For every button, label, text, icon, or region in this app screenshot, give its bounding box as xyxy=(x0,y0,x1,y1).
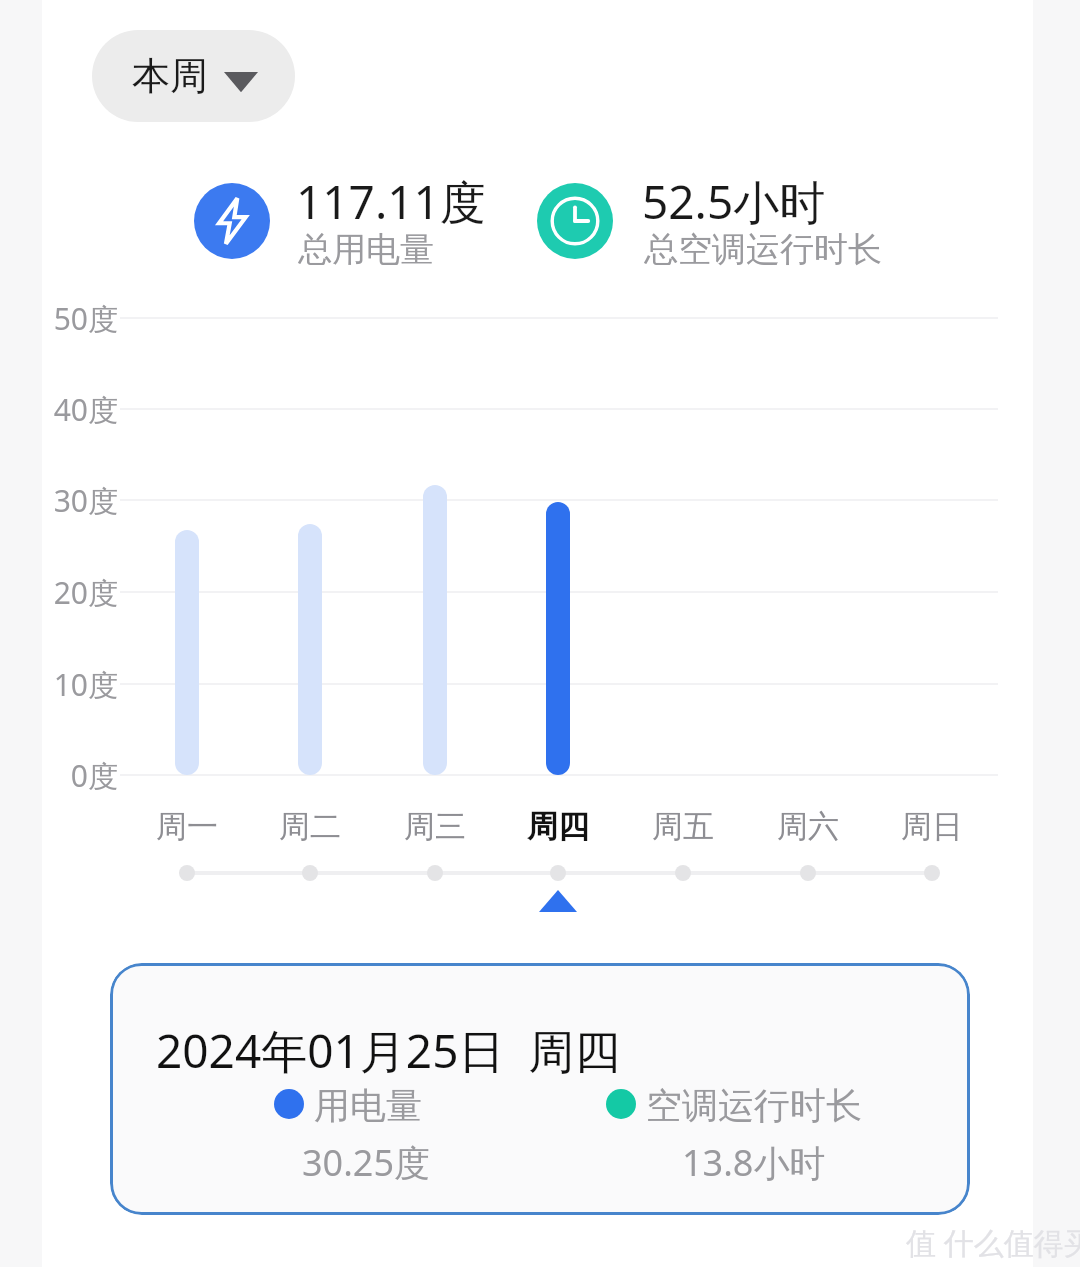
staticText: 0度 xyxy=(24,755,118,796)
staticText: 总空调运行时长 xyxy=(644,228,882,271)
staticText: 30度 xyxy=(24,480,118,521)
staticText: 52.5小时 xyxy=(642,170,826,233)
staticText: 周二 xyxy=(279,807,341,846)
button[interactable]: 总空调运行时长 xyxy=(537,183,613,259)
button[interactable]: 周三 xyxy=(375,802,495,850)
staticText: 周四 xyxy=(527,807,589,846)
staticText: 用电量 xyxy=(314,1083,422,1128)
staticText: 2024年01月25日 周四 xyxy=(156,1019,621,1082)
staticText: 30.25度 xyxy=(302,1138,431,1187)
staticText: 周日 xyxy=(901,807,963,846)
button[interactable]: 周五 xyxy=(623,802,743,850)
staticText: 周五 xyxy=(652,807,714,846)
staticText: 40度 xyxy=(24,389,118,430)
button[interactable]: 总用电量 xyxy=(194,183,270,259)
staticText: 本周 xyxy=(132,52,208,100)
staticText: 空调运行时长 xyxy=(646,1083,862,1128)
button[interactable]: 周日 xyxy=(872,802,992,850)
staticText: 总用电量 xyxy=(298,228,434,271)
button[interactable]: 周一 xyxy=(127,802,247,850)
staticText: 值 什么值得买 xyxy=(906,1222,1080,1263)
staticText: 10度 xyxy=(24,664,118,705)
staticText: 50度 xyxy=(24,298,118,339)
staticText: 20度 xyxy=(24,572,118,613)
staticText: 周三 xyxy=(404,807,466,846)
button[interactable]: 2024年01月25日 周四 xyxy=(110,963,970,1215)
button[interactable]: 周六 xyxy=(748,802,868,850)
staticText: 13.8小时 xyxy=(682,1138,826,1187)
staticText: 周一 xyxy=(156,807,218,846)
button[interactable]: 周二 xyxy=(250,802,370,850)
staticText: 117.11度 xyxy=(296,170,486,233)
staticText: 周六 xyxy=(777,807,839,846)
button[interactable]: 本周 xyxy=(92,30,295,122)
button[interactable]: 周四 xyxy=(498,802,618,850)
